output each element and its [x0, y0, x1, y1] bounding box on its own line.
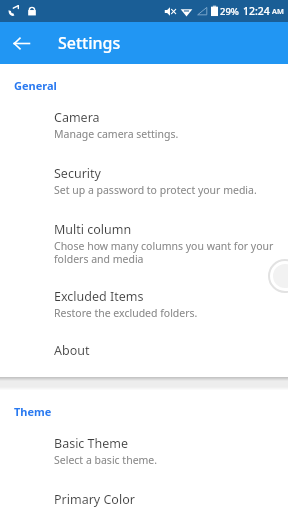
staticText: 12:24: [243, 4, 270, 18]
staticText: Set up a password to protect your media.: [54, 183, 257, 197]
button[interactable]: Excluded Items: [0, 266, 288, 320]
staticText: 29%: [220, 5, 239, 18]
staticText: Basic Theme: [54, 435, 129, 452]
staticText: Select a basic theme.: [54, 453, 158, 467]
staticText: General: [14, 78, 57, 93]
staticText: Theme: [14, 404, 52, 419]
staticText: Camera: [54, 109, 100, 126]
staticText: Restore the excluded folders.: [54, 306, 198, 320]
button[interactable]: Camera: [0, 95, 288, 141]
staticText: Excluded Items: [54, 288, 144, 305]
staticText: Manage camera settings.: [54, 127, 179, 141]
staticText: Settings: [58, 32, 121, 54]
button[interactable]: Multi column: [0, 197, 288, 266]
staticText: AM: [272, 6, 284, 16]
button[interactable]: About: [0, 320, 288, 377]
button[interactable]: Back: [0, 22, 42, 64]
staticText: Chose how many columns you want for your…: [54, 239, 274, 266]
staticText: Multi column: [54, 221, 132, 238]
staticText: About: [54, 342, 90, 359]
button[interactable]: Basic Theme: [0, 421, 288, 467]
staticText: Primary Color: [54, 491, 135, 508]
staticText: Security: [54, 165, 101, 182]
button[interactable]: Security: [0, 141, 288, 197]
button[interactable]: Primary Color: [0, 467, 288, 512]
